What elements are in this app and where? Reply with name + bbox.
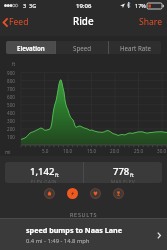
staticText: 500 <box>7 102 15 108</box>
staticText: 20.0 <box>110 148 120 154</box>
staticText: speed bumps to Naas Lane <box>26 225 123 235</box>
staticText: 700 <box>7 86 15 92</box>
staticText: 100 <box>7 134 15 140</box>
staticText: 300 <box>7 118 15 124</box>
staticText: 30.0 <box>157 148 167 154</box>
staticText: 778 <box>113 165 130 178</box>
staticText: 0.4 mi - 1:49 - 14.8 mph <box>26 237 90 245</box>
staticText: 19:06 <box>76 2 92 10</box>
button[interactable]: Achievements <box>113 188 124 199</box>
staticText: Heart Rate <box>120 44 151 52</box>
button[interactable]: Heart rate <box>90 188 101 199</box>
staticText: 800 <box>7 78 15 84</box>
staticText: 3G <box>29 2 37 9</box>
staticText: 200 <box>7 126 15 132</box>
button[interactable]: Speed <box>67 188 78 199</box>
staticText: Elevation <box>17 44 45 52</box>
button[interactable]: Feed <box>0 12 33 32</box>
staticText: 3 <box>23 2 27 9</box>
button[interactable]: Heart Rate <box>109 41 161 54</box>
staticText: ft <box>12 61 16 67</box>
button[interactable]: Elevation <box>6 41 55 54</box>
button[interactable]: Share <box>135 12 167 32</box>
staticText: mi <box>5 149 11 155</box>
staticText: Share <box>139 16 163 28</box>
staticText: ft <box>130 171 134 178</box>
staticText: Ride <box>73 15 94 28</box>
button[interactable]: Speed <box>56 41 108 54</box>
staticText: Feed <box>9 16 29 28</box>
staticText: 10.0 <box>63 148 73 154</box>
staticText: 400 <box>7 110 15 116</box>
button[interactable]: speed bumps to Naas Lane <box>0 219 167 250</box>
staticText: 600 <box>7 94 15 100</box>
staticText: Speed <box>73 44 91 52</box>
staticText: ELEV GAIN <box>31 179 57 183</box>
staticText: 17% <box>135 2 146 9</box>
staticText: 900 <box>7 70 15 76</box>
button[interactable]: Relative effort <box>44 188 55 199</box>
staticText: 5.0 <box>42 148 49 154</box>
staticText: ft <box>55 171 59 178</box>
staticText: 15.0 <box>87 148 97 154</box>
staticText: 1,142 <box>30 165 55 178</box>
staticText: RESULTS <box>70 211 98 218</box>
staticText: 25.0 <box>134 148 144 154</box>
staticText: MAX ELEV <box>111 179 136 183</box>
